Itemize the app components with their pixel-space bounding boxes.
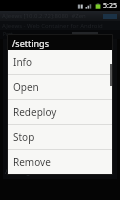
staticText: 5:25: [103, 1, 117, 11]
staticText: Stop: [13, 130, 35, 144]
button[interactable]: Open: [8, 75, 112, 99]
button[interactable]: Remove: [8, 150, 112, 174]
staticText: Redeploy: [13, 105, 57, 119]
staticText: /settings: [5, 167, 34, 177]
button[interactable]: Stop: [8, 125, 112, 149]
staticText: Remove: [13, 155, 51, 169]
staticText: Info: [13, 55, 33, 69]
staticText: Port: [3, 31, 13, 38]
button[interactable]: Info: [8, 50, 112, 74]
staticText: AJeews - Web Container for Android: [2, 22, 103, 30]
staticText: AJeews [10.0.2.72]:8080 #Zen: [2, 12, 86, 20]
button[interactable]: Redeploy: [8, 100, 112, 124]
staticText: Open: [13, 80, 39, 94]
staticText: /settings: [12, 37, 49, 49]
